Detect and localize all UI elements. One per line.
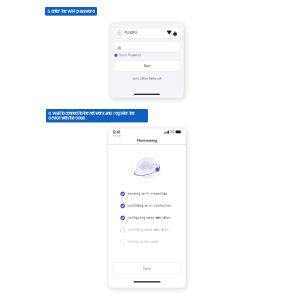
staticText: Save Password xyxy=(119,54,141,57)
staticText: 5G xyxy=(170,130,174,134)
staticText: Done xyxy=(143,267,151,271)
staticText: Provisioning xyxy=(137,138,157,143)
staticText: Sending Wi-Fi credentials. xyxy=(127,192,167,195)
button[interactable]: PUMPU xyxy=(114,27,180,38)
staticText: Airline xyxy=(112,134,120,137)
staticText: PUMPU xyxy=(125,31,138,35)
staticText: … xyxy=(174,45,177,49)
button[interactable]: Done xyxy=(113,263,181,275)
staticText: Join Other Network xyxy=(132,77,162,81)
staticText: Setting up the Node. xyxy=(127,240,159,243)
button[interactable]: Start xyxy=(114,60,180,71)
staticText: 5. Enter the WiFi password xyxy=(47,9,95,14)
staticText: 12:41 xyxy=(112,130,119,134)
staticText: Confirming Node association. xyxy=(127,228,169,231)
staticText: 6. Wait to connect to the network and re… xyxy=(48,111,134,116)
button[interactable]: Save Password xyxy=(110,54,184,57)
staticText: Confirming Wi-Fi connection. xyxy=(127,204,172,207)
staticText: Start xyxy=(143,64,150,68)
staticText: Configuring Node association. xyxy=(127,216,171,219)
button[interactable]: Join Other Network xyxy=(132,77,162,81)
button[interactable]: Password xyxy=(114,41,180,52)
staticText: device with the cloud. xyxy=(48,116,86,120)
